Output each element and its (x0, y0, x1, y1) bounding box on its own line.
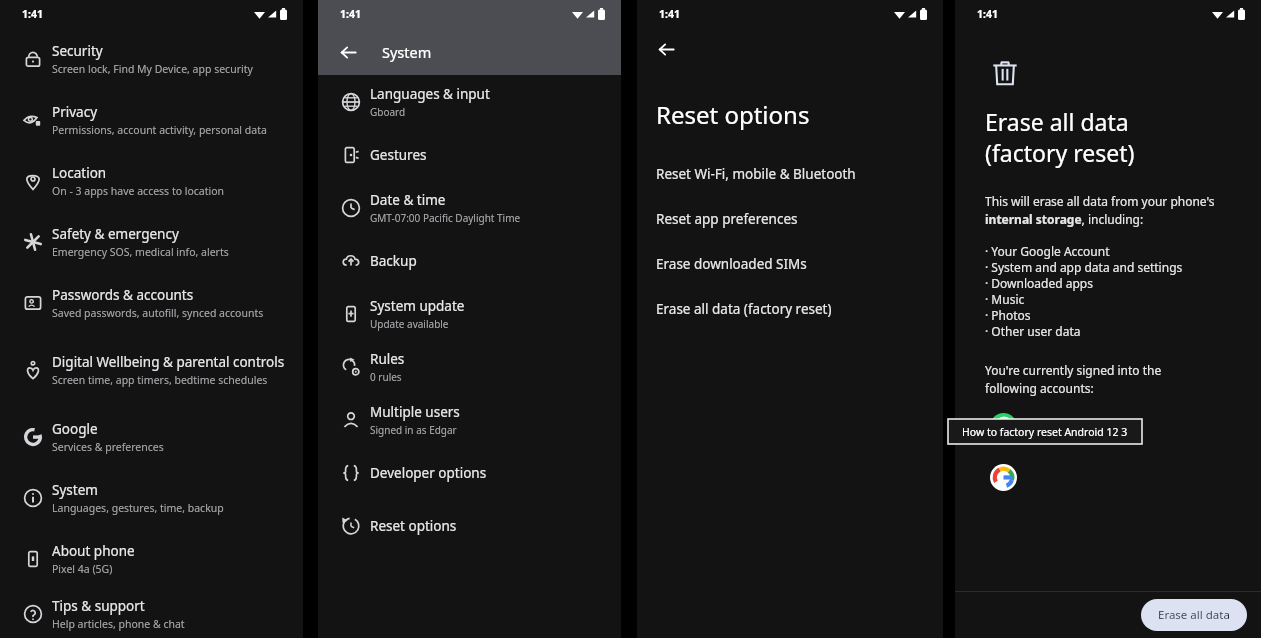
staticText: Screen time, app timers, bedtime schedul… (52, 373, 268, 387)
button[interactable]: Google (0, 406, 303, 467)
staticText: Multiple users (370, 403, 460, 421)
button[interactable]: Tips & support (0, 589, 303, 638)
button[interactable]: Erase all data (1141, 599, 1247, 631)
staticText: Emergency SOS, medical info, alerts (52, 245, 229, 259)
staticText: This will erase all data from your phone… (985, 193, 1215, 228)
staticText: Erase all data (985, 106, 1129, 137)
staticText: How to factory reset Android 12 3 (962, 425, 1128, 439)
staticText: · Photos (985, 307, 1031, 323)
staticText: Safety & emergency (52, 225, 179, 243)
button[interactable]: Multiple users (318, 393, 621, 446)
button[interactable]: Privacy (0, 89, 303, 150)
staticText: Passwords & accounts (52, 286, 194, 304)
staticText: · System and app data and settings (985, 259, 1183, 275)
button[interactable]: Date & time (318, 181, 621, 234)
staticText: Tips & support (52, 597, 145, 615)
staticText: Developer options (370, 464, 487, 482)
staticText: Gboard (370, 105, 406, 119)
staticText: Pixel 4a (5G) (52, 562, 113, 576)
staticText: Languages & input (370, 85, 490, 103)
staticText: Privacy (52, 103, 98, 121)
staticText: Signed in as Edgar (370, 423, 457, 437)
staticText: Reset Wi-Fi, mobile & Bluetooth (656, 165, 856, 183)
staticText: 0 rules (370, 370, 402, 384)
button[interactable]: Security (0, 28, 303, 89)
staticText: Permissions, account activity, personal … (52, 123, 267, 137)
staticText: (factory reset) (985, 137, 1135, 168)
staticText: Location (52, 164, 107, 182)
staticText: Help articles, phone & chat (52, 617, 185, 631)
button[interactable]: System (0, 467, 303, 528)
staticText: Erase all data (factory reset) (656, 300, 832, 318)
staticText: Digital Wellbeing & parental controls (52, 353, 285, 371)
staticText: 1:41 (977, 7, 998, 21)
staticText: Erase downloaded SIMs (656, 255, 807, 273)
staticText: Update available (370, 317, 449, 331)
button[interactable]: Rules (318, 340, 621, 393)
button[interactable]: Reset app preferences (637, 196, 943, 241)
staticText: About phone (52, 542, 135, 560)
staticText: Backup (370, 252, 417, 270)
staticText: Languages, gestures, time, backup (52, 501, 224, 515)
staticText: System (382, 42, 432, 62)
button[interactable]: Safety & emergency (0, 211, 303, 272)
staticText: Reset options (370, 517, 457, 535)
staticText: System (52, 481, 98, 499)
staticText: 1:41 (340, 7, 361, 21)
button[interactable]: Digital Wellbeing & parental controls (0, 333, 303, 406)
staticText: Gestures (370, 146, 427, 164)
button[interactable]: Languages & input (318, 75, 621, 128)
staticText: Reset app preferences (656, 210, 798, 228)
button[interactable]: Back (330, 34, 366, 70)
staticText: Security (52, 42, 103, 60)
button[interactable]: System update (318, 287, 621, 340)
staticText: On - 3 apps have access to location (52, 184, 225, 198)
staticText: 1:41 (22, 7, 43, 21)
staticText: You're currently signed into the followi… (985, 362, 1162, 397)
staticText: Erase all data (1158, 607, 1230, 623)
staticText: Services & preferences (52, 440, 164, 454)
staticText: System update (370, 297, 465, 315)
button[interactable]: Erase downloaded SIMs (637, 241, 943, 286)
staticText: · Other user data (985, 323, 1081, 339)
staticText: · Music (985, 291, 1025, 307)
staticText: Saved passwords, autofill, synced accoun… (52, 306, 264, 320)
button[interactable]: About phone (0, 528, 303, 589)
staticText: · Downloaded apps (985, 275, 1093, 291)
button[interactable]: Location (0, 150, 303, 211)
button[interactable]: Erase all data (factory reset) (637, 286, 943, 331)
button[interactable]: Backup (318, 234, 621, 287)
staticText: GMT-07:00 Pacific Daylight Time (370, 211, 521, 225)
staticText: 1:41 (659, 7, 680, 21)
button[interactable]: Developer options (318, 446, 621, 499)
button[interactable]: Gestures (318, 128, 621, 181)
staticText: Rules (370, 350, 405, 368)
staticText: Date & time (370, 191, 446, 209)
button[interactable]: Passwords & accounts (0, 272, 303, 333)
staticText: Reset options (656, 98, 810, 131)
button[interactable]: Reset Wi-Fi, mobile & Bluetooth (637, 151, 943, 196)
button[interactable]: Back (647, 30, 685, 68)
button[interactable]: Reset options (318, 499, 621, 552)
staticText: WhatsApp (1029, 418, 1090, 435)
staticText: · Your Google Account (985, 243, 1110, 259)
staticText: Google (52, 420, 98, 438)
staticText: Screen lock, Find My Device, app securit… (52, 62, 253, 76)
